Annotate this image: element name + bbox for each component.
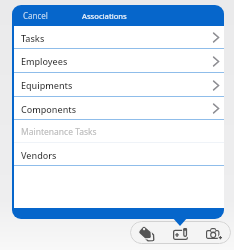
staticText: Cancel <box>23 10 48 21</box>
staticText: Components <box>21 103 77 115</box>
button[interactable]: Cancel <box>21 7 50 24</box>
staticText: Employees <box>21 55 68 67</box>
button[interactable]: Components <box>14 97 224 120</box>
button[interactable]: Tasks <box>14 26 224 49</box>
button[interactable]: Employees <box>14 49 224 73</box>
button[interactable]: Add photo <box>198 221 229 244</box>
button[interactable]: Vendors <box>14 143 224 166</box>
button[interactable]: Equipments <box>14 73 224 97</box>
button[interactable]: Add note <box>165 221 196 244</box>
staticText: Maintenance Tasks <box>21 126 97 138</box>
staticText: Tasks <box>21 32 45 44</box>
staticText: Associations <box>82 11 127 21</box>
staticText: Vendors <box>21 149 57 161</box>
staticText: Equipments <box>21 79 73 91</box>
button[interactable]: Tags <box>132 221 163 244</box>
